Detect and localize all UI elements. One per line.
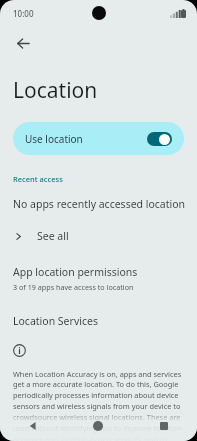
staticText: No apps recently accessed location: [13, 197, 186, 211]
other: Information: [13, 344, 26, 357]
staticText: 3 of 19 apps have access to location: [13, 282, 134, 292]
button[interactable]: Back: [0, 411, 65, 441]
staticText: When Location Accuracy is on, apps and s…: [13, 369, 186, 441]
button[interactable]: App location permissions: [0, 263, 197, 294]
staticText: Location: [13, 76, 98, 105]
button[interactable]: Recent apps: [131, 411, 197, 441]
staticText: App location permissions: [13, 265, 138, 279]
staticText: Use location: [25, 132, 147, 146]
button[interactable]: See all: [0, 223, 197, 249]
staticText: Recent access: [13, 174, 63, 184]
button[interactable]: Back: [6, 26, 40, 60]
button[interactable]: Use location: [13, 122, 184, 155]
button[interactable]: Home: [65, 411, 131, 441]
staticText: 10:00: [13, 8, 34, 19]
staticText: Location Services: [13, 314, 98, 328]
staticText: See all: [37, 229, 69, 243]
